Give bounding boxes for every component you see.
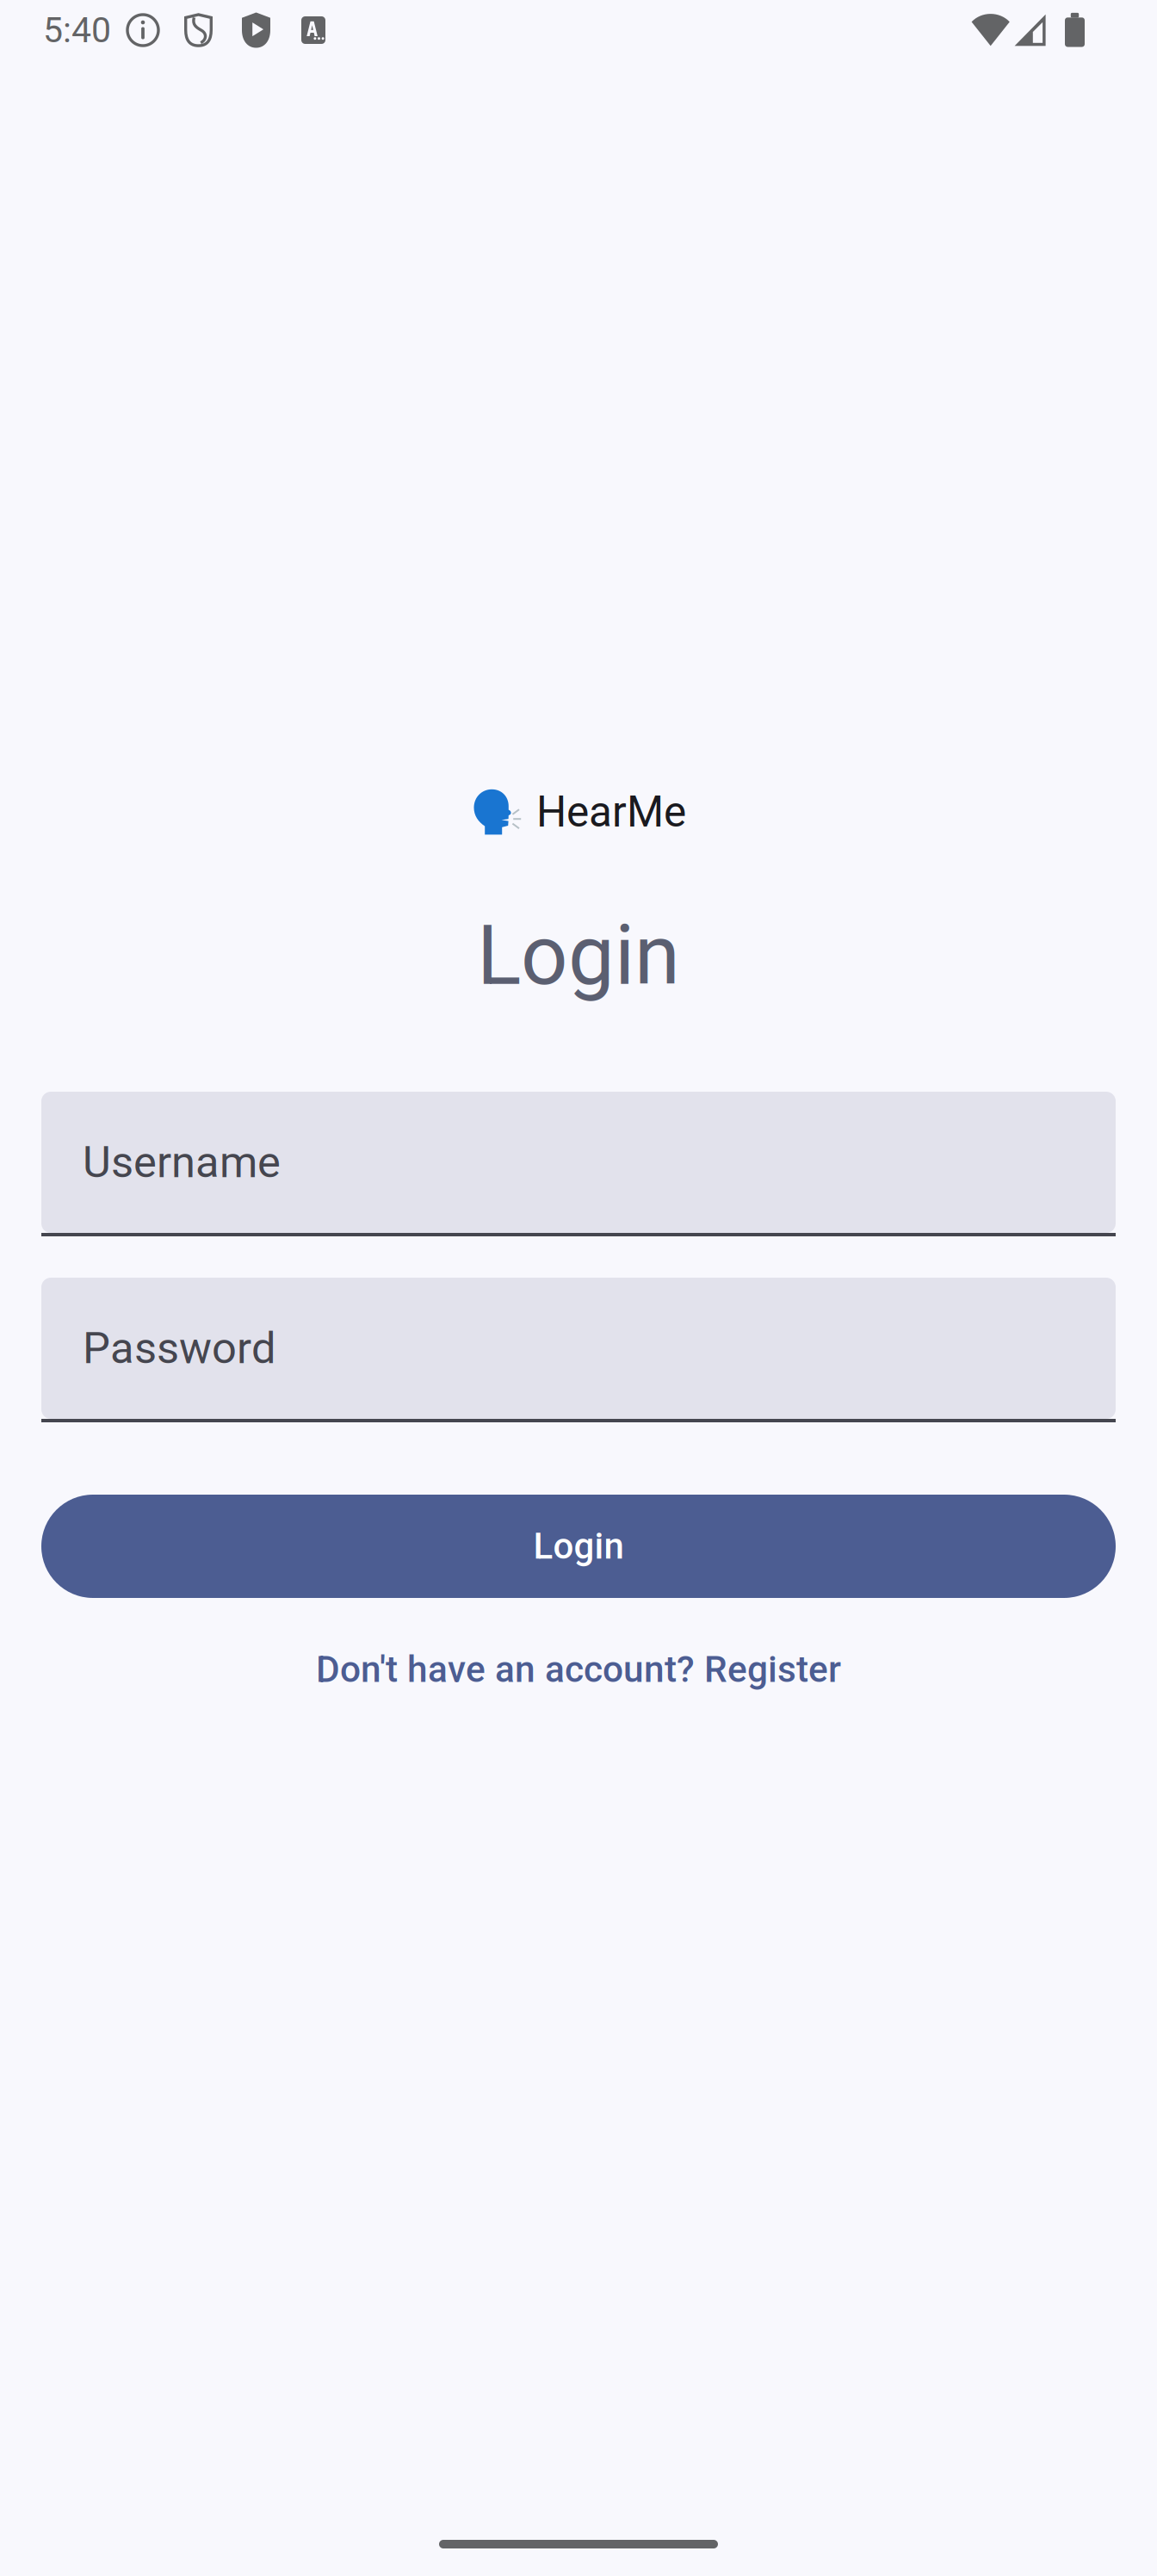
button[interactable]: Password — [41, 1278, 1116, 1422]
staticText: Login — [533, 1525, 624, 1567]
staticText: Login — [477, 907, 680, 1004]
button[interactable]: Login — [41, 1495, 1116, 1598]
staticText: Don't have an account? Register — [316, 1648, 841, 1691]
staticText: Password — [83, 1323, 276, 1374]
button[interactable]: Don't have an account? Register — [303, 1637, 854, 1702]
button[interactable]: Username — [41, 1092, 1116, 1236]
staticText: Username — [83, 1137, 281, 1188]
staticText: HearMe — [536, 787, 686, 837]
staticText: 5:40 — [43, 9, 111, 51]
